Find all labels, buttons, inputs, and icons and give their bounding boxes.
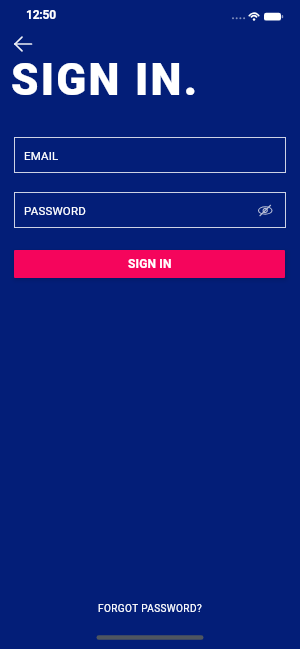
staticText: SIGN IN. [11,54,200,106]
staticText: PASSWORD [24,204,86,217]
staticText: 12:50 [26,8,56,22]
button[interactable]: EMAIL [14,137,286,173]
staticText: SIGN IN [128,257,172,271]
button[interactable] [8,34,40,55]
staticText: EMAIL [24,149,59,162]
button[interactable]: SIGN IN [14,250,285,278]
button[interactable]: FORGOT PASSWORD? [0,599,300,619]
staticText: FORGOT PASSWORD? [98,603,203,615]
button[interactable]: PASSWORD [14,192,286,228]
